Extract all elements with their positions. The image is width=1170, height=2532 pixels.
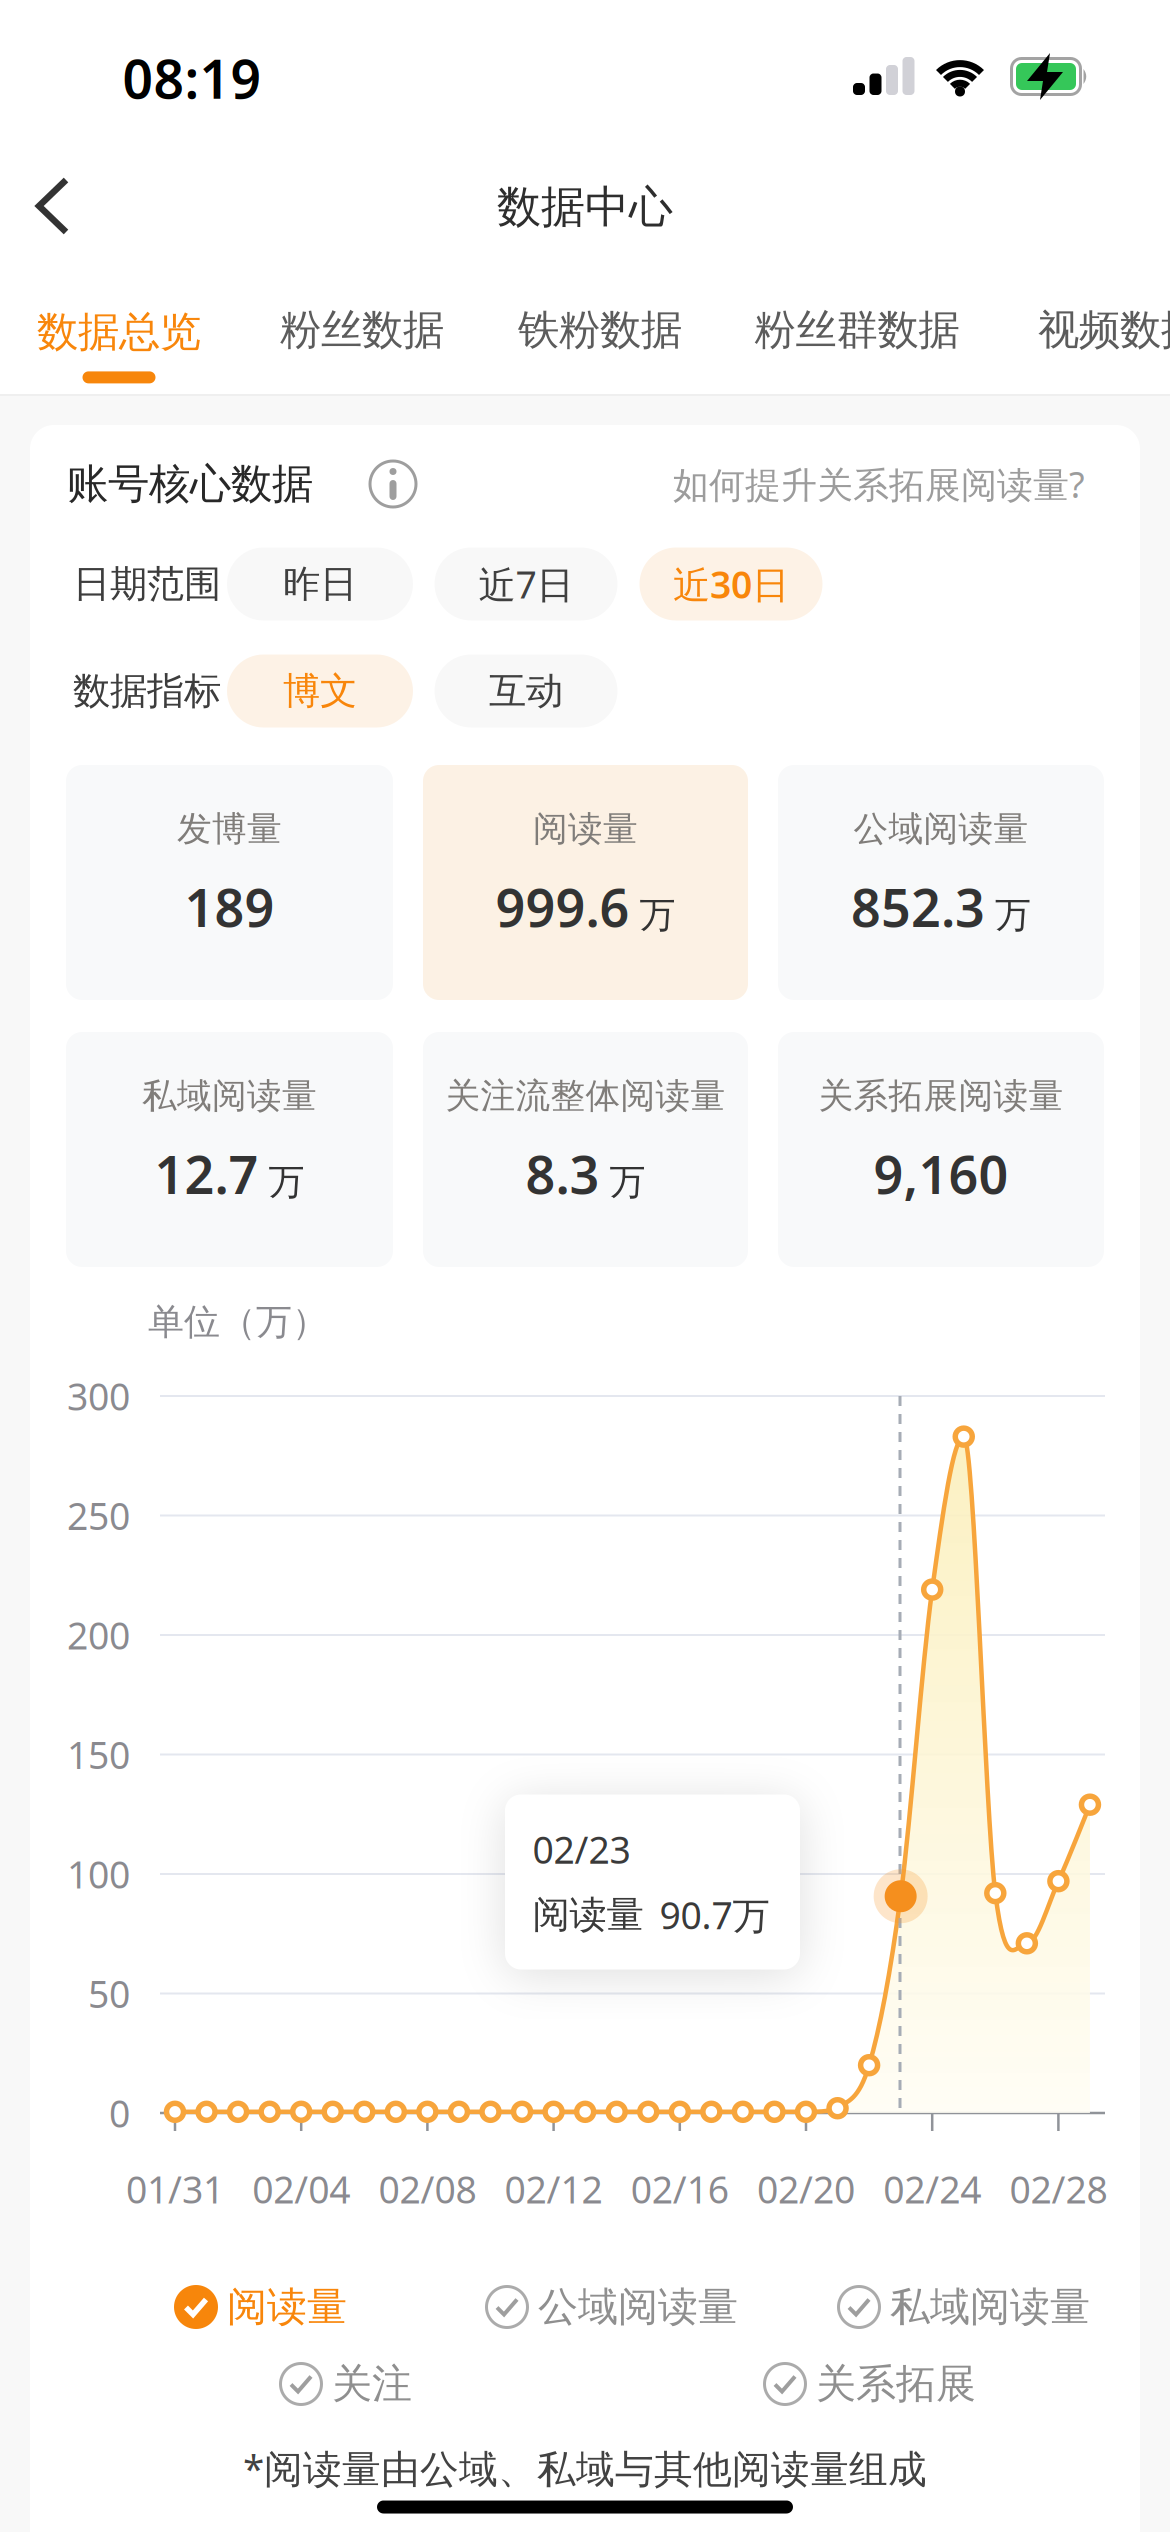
button[interactable]: 阅读量 [173,2282,347,2331]
staticText: 数据指标 [73,668,221,714]
staticText: 公域阅读量 [853,808,1028,850]
staticText: 阅读量 [532,1892,643,1938]
staticText: 02/12 [505,2164,603,2214]
staticText: 9,160 [873,1139,1008,1208]
staticText: 02/28 [1009,2164,1107,2214]
staticText: 02/16 [631,2164,729,2214]
staticText: 12.7 [154,1139,258,1208]
staticText: 100 [67,1849,130,1899]
staticText: 数据总览 [37,307,201,357]
staticText: 关注流整体阅读量 [445,1075,725,1117]
staticText: 如何提升关系拓展阅读量? [673,460,1085,508]
staticText: 0 [109,2088,130,2138]
button[interactable]: 博文 [227,654,413,727]
staticText: 私域阅读量 [890,2282,1090,2331]
staticText: 昨日 [283,561,357,607]
staticText: 单位（万） [148,1300,328,1344]
staticText: 铁粉数据 [518,305,682,355]
staticText: 万 [639,893,675,937]
staticText: 02/20 [757,2164,855,2214]
button[interactable]: 数据总览 [37,307,201,383]
staticText: 万 [268,1160,304,1204]
staticText: 日期范围 [73,561,221,607]
button[interactable]: 粉丝群数据 [754,305,959,355]
button[interactable]: 关注 [278,2359,412,2408]
button[interactable]: 昨日 [227,547,413,620]
staticText: 250 [67,1491,130,1540]
staticText: 02/23 [532,1824,630,1874]
button[interactable]: 关系拓展 [762,2359,976,2408]
staticText: 8.3 [525,1139,599,1208]
staticText: 粉丝群数据 [754,305,959,355]
button[interactable]: 关于账号核心数据 [370,461,416,507]
staticText: 数据中心 [497,180,673,234]
staticText: 关注 [332,2359,412,2408]
button[interactable]: 互动 [434,654,617,727]
staticText: 万 [995,893,1031,937]
button[interactable]: Back [36,178,70,234]
staticText: 200 [67,1610,130,1660]
staticText: 粉丝数据 [280,305,444,355]
button[interactable]: 关注流整体阅读量 [423,1032,748,1267]
button[interactable]: 铁粉数据 [518,305,682,355]
staticText: 852.3 [851,872,985,941]
staticText: 账号核心数据 [67,459,313,509]
staticText: 关系拓展阅读量 [818,1075,1063,1117]
staticText: 视频数据 [1038,305,1170,355]
staticText: 近7日 [478,559,573,609]
button[interactable]: 私域阅读量 [836,2282,1090,2331]
staticText: 02/24 [883,2164,981,2214]
staticText: 发博量 [177,808,282,850]
staticText: 300 [67,1371,130,1421]
button[interactable]: 粉丝数据 [280,305,444,355]
staticText: 万 [609,1160,645,1204]
staticText: 189 [184,872,274,941]
button[interactable]: 关系拓展阅读量 [778,1032,1104,1267]
button[interactable]: 近7日 [434,547,617,620]
button[interactable]: 如何提升关系拓展阅读量? [673,460,1085,508]
staticText: 50 [88,1969,130,2018]
staticText: 公域阅读量 [538,2282,738,2331]
staticText: 999.6 [495,872,629,941]
button[interactable]: 私域阅读量 [66,1032,393,1267]
button[interactable]: 公域阅读量 [484,2282,738,2331]
staticText: 近30日 [673,559,789,609]
staticText: *阅读量由公域、私域与其他阅读量组成 [243,2442,927,2494]
staticText: 阅读量 [533,808,638,850]
staticText: 关系拓展 [816,2359,976,2408]
staticText: 阅读量 [227,2282,347,2331]
staticText: 90.7万 [659,1890,769,1940]
button[interactable]: 发博量 [66,765,393,1000]
staticText: 私域阅读量 [142,1075,317,1117]
button[interactable]: 近30日 [639,547,822,620]
button[interactable]: 阅读量 [423,765,748,1000]
button[interactable]: 视频数据 [1038,305,1170,355]
staticText: 博文 [283,668,357,714]
staticText: 互动 [489,668,563,714]
staticText: 08:19 [122,43,261,113]
staticText: 150 [67,1730,130,1779]
staticText: 01/31 [126,2164,224,2214]
button[interactable]: 公域阅读量 [778,765,1104,1000]
staticText: 02/08 [378,2164,476,2214]
staticText: 02/04 [252,2164,350,2214]
